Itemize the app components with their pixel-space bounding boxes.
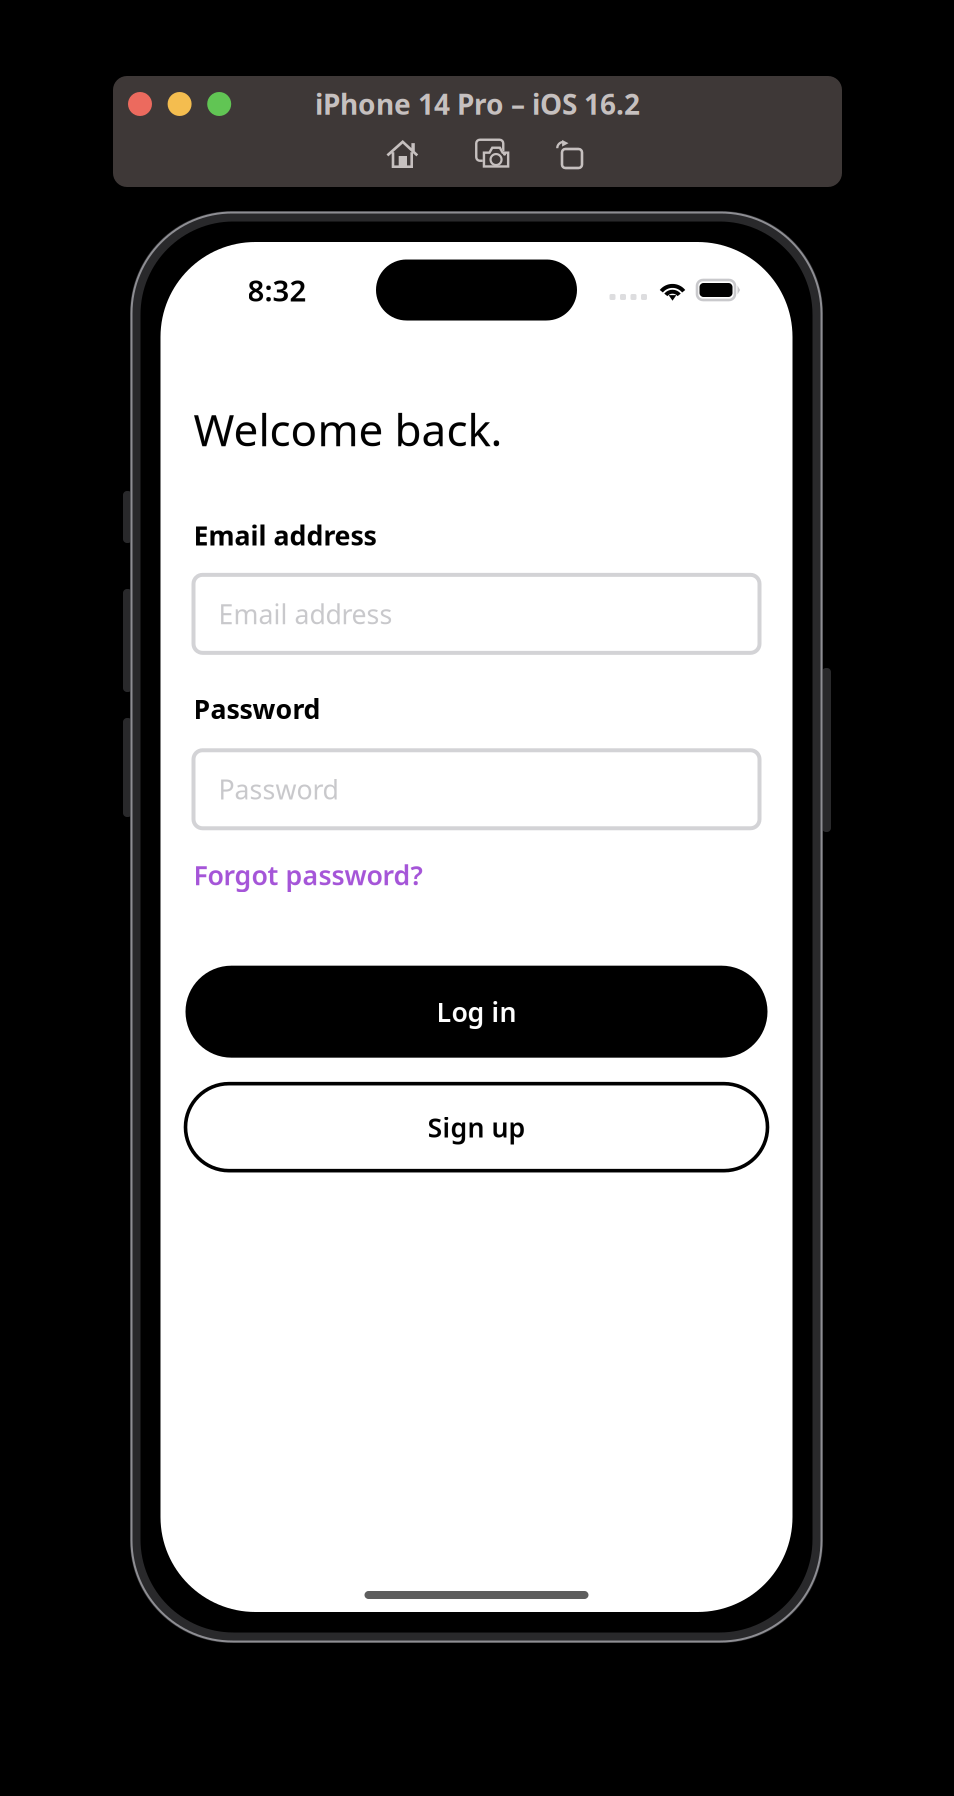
staticText: Email address [218, 596, 392, 631]
button[interactable]: Forgot password? [193, 828, 422, 899]
button[interactable]: Email address [193, 575, 759, 653]
button[interactable]: Home [386, 140, 418, 168]
button[interactable]: Log in [185, 966, 767, 1058]
staticText: Sign up [427, 1109, 525, 1145]
button[interactable]: Minimise window [168, 92, 192, 116]
button[interactable]: Password [193, 750, 759, 828]
button[interactable]: Zoom window [207, 92, 231, 116]
staticText: iPhone 14 Pro – iOS 16.2 [315, 85, 640, 123]
button[interactable]: Rotate [555, 140, 582, 168]
staticText: Forgot password? [193, 857, 422, 893]
staticText: Password [193, 691, 320, 726]
staticText: Password [218, 771, 338, 807]
button[interactable]: Close window [128, 92, 152, 116]
button[interactable]: Sign up [185, 1084, 767, 1171]
staticText: Log in [436, 994, 516, 1029]
staticText: 8:32 [247, 270, 306, 309]
staticText: Welcome back. [193, 400, 502, 458]
button[interactable]: Screenshot [476, 140, 509, 168]
staticText: Email address [193, 517, 376, 553]
